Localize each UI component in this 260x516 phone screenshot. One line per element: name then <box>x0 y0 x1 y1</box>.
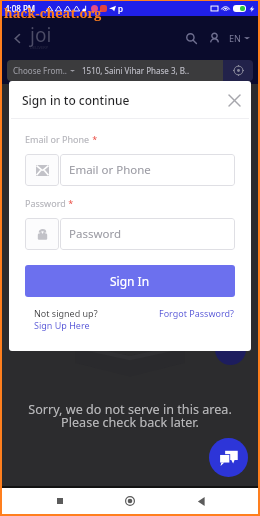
button[interactable]: Email or Phone <box>25 154 235 186</box>
staticText: Not signed up? <box>34 307 98 319</box>
staticText: Password <box>69 226 122 242</box>
staticText: 4:08 PM <box>5 3 36 14</box>
button[interactable]: Forgot Password? <box>159 307 234 319</box>
button[interactable]: EN <box>229 32 250 44</box>
button[interactable]: Use current location <box>223 60 253 81</box>
staticText: * <box>66 197 74 209</box>
button[interactable]: Sign Up Here <box>34 319 90 331</box>
button[interactable]: Sign In <box>25 265 235 297</box>
staticText: Sign In <box>110 273 150 289</box>
staticText: EN <box>229 32 241 44</box>
button[interactable]: Back <box>8 29 26 47</box>
staticText: Sorry, we do not serve in this area. Ple… <box>28 401 232 431</box>
staticText: hack-cheat.org <box>4 4 102 22</box>
staticText: DELIVERY <box>30 45 48 50</box>
button[interactable]: Recents <box>47 488 73 514</box>
staticText: Email or Phone <box>25 133 90 145</box>
button[interactable]: Back <box>188 488 214 514</box>
staticText: Choose From.. <box>13 65 68 76</box>
button[interactable]: Password <box>25 218 235 250</box>
staticText: joi <box>30 22 52 48</box>
staticText: Email or Phone <box>69 162 151 178</box>
button[interactable]: Chat support <box>209 438 248 477</box>
button[interactable]: Search <box>181 28 201 48</box>
button[interactable]: Cart <box>215 334 246 365</box>
button[interactable]: Close <box>223 89 245 111</box>
staticText: * <box>90 133 98 145</box>
staticText: p <box>118 3 123 14</box>
staticText: Sign in to continue <box>22 92 130 108</box>
staticText: Password <box>25 197 66 209</box>
button[interactable]: Choose From.. <box>13 60 217 81</box>
button[interactable]: Account <box>204 28 224 48</box>
button[interactable]: Home <box>117 488 143 514</box>
staticText: 1510, Saini Vihar Phase 3, B.. <box>82 65 190 76</box>
